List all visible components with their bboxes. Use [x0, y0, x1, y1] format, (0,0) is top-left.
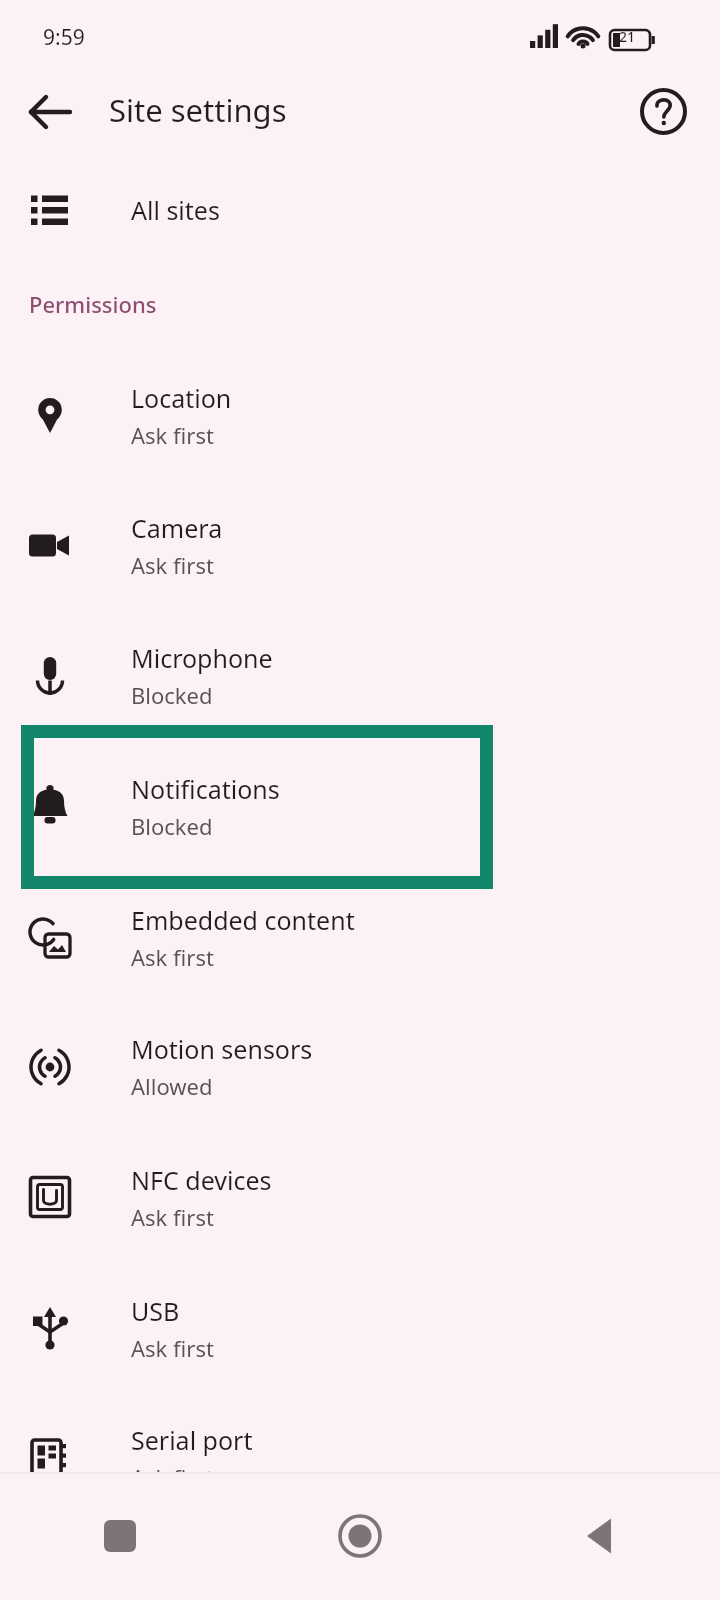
- button[interactable]: Embedded content: [0, 879, 720, 995]
- staticText: USB: [131, 1294, 180, 1328]
- staticText: Blocked: [131, 811, 213, 841]
- button[interactable]: Serial port: [0, 1399, 720, 1515]
- staticText: Motion sensors: [131, 1032, 313, 1066]
- staticText: All sites: [131, 193, 220, 227]
- staticText: Blocked: [131, 680, 213, 710]
- staticText: 21: [619, 27, 636, 46]
- staticText: Ask first: [131, 1462, 214, 1492]
- button[interactable]: Camera: [0, 487, 720, 603]
- staticText: Serial port: [131, 1423, 253, 1457]
- staticText: Ask first: [131, 1202, 214, 1232]
- button[interactable]: Location: [0, 357, 720, 473]
- staticText: Notifications: [131, 772, 280, 806]
- staticText: Embedded content: [131, 903, 355, 937]
- button[interactable]: Motion sensors: [0, 1008, 720, 1124]
- button[interactable]: Back: [22, 83, 80, 141]
- staticText: Location: [131, 381, 232, 415]
- button[interactable]: Back: [480, 1472, 720, 1600]
- button[interactable]: Home: [240, 1472, 480, 1600]
- button[interactable]: Notifications: [0, 748, 720, 864]
- staticText: Ask first: [131, 420, 214, 450]
- button[interactable]: All sites: [0, 168, 720, 252]
- staticText: Allowed: [131, 1071, 213, 1101]
- staticText: Ask first: [131, 1333, 214, 1363]
- button[interactable]: Recent apps: [0, 1472, 240, 1600]
- staticText: Microphone: [131, 641, 273, 675]
- staticText: Permissions: [29, 289, 157, 319]
- button[interactable]: NFC devices: [0, 1139, 720, 1255]
- staticText: Ask first: [131, 942, 214, 972]
- button[interactable]: Microphone: [0, 617, 720, 733]
- staticText: Camera: [131, 511, 223, 545]
- staticText: Ask first: [131, 550, 214, 580]
- button[interactable]: USB: [0, 1270, 720, 1386]
- button[interactable]: Help: [635, 83, 692, 140]
- staticText: Site settings: [109, 89, 287, 131]
- staticText: 9:59: [43, 23, 85, 52]
- staticText: NFC devices: [131, 1163, 272, 1197]
